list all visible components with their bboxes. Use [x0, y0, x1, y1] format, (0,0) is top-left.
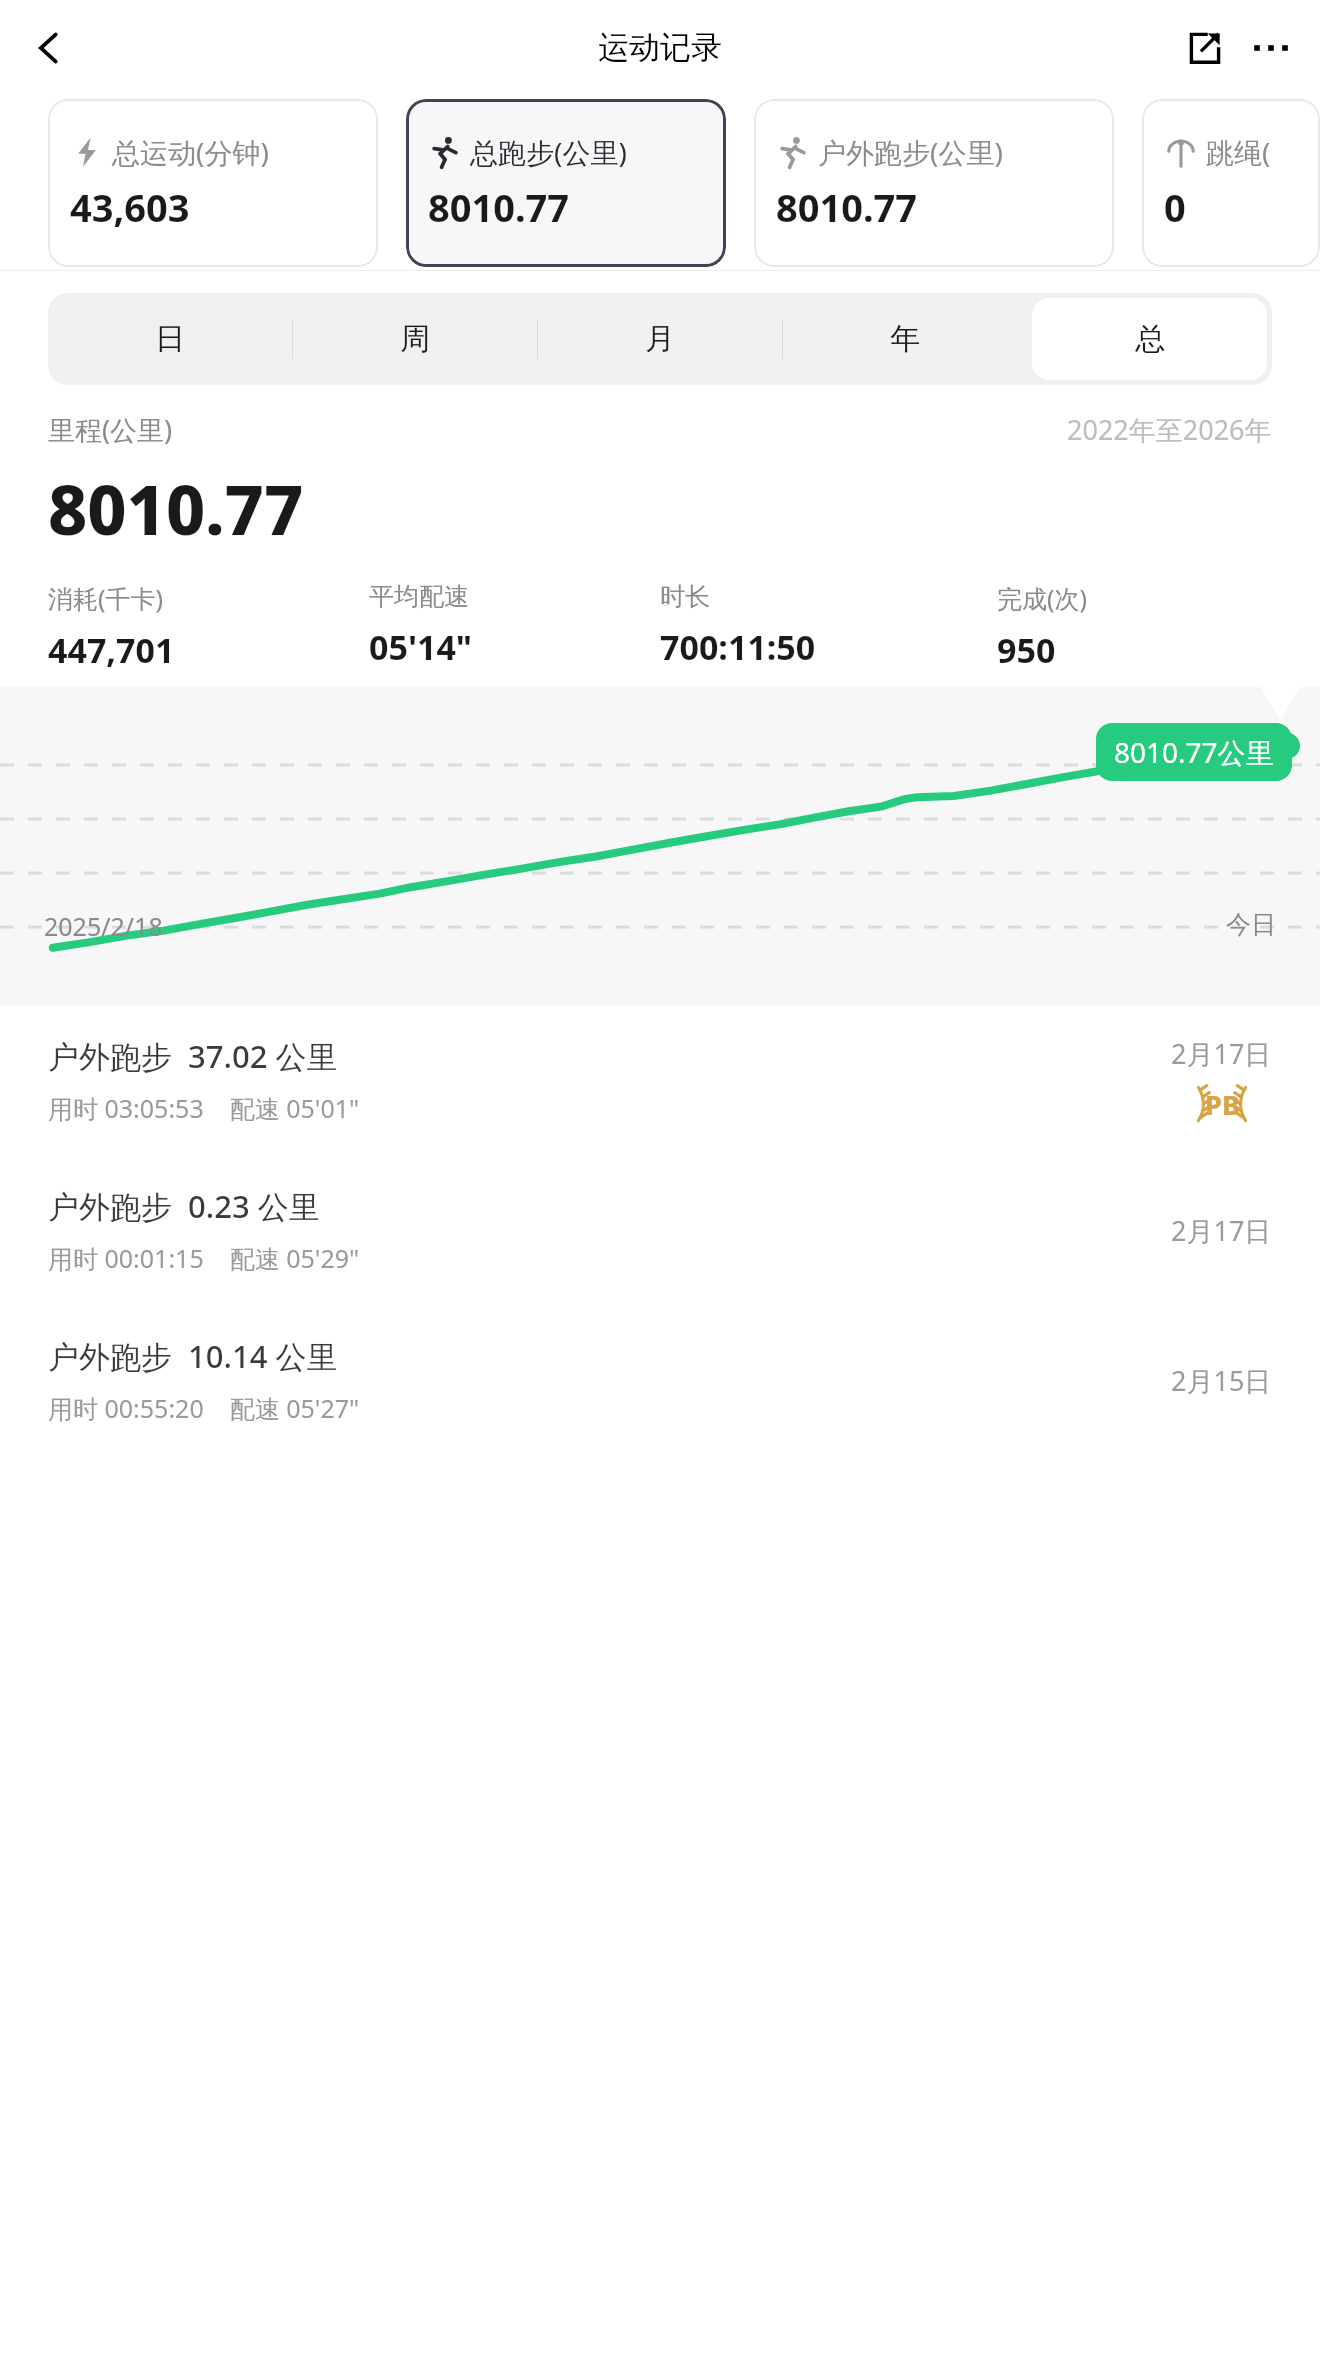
staticText: 日 — [155, 320, 185, 358]
staticText: 0 — [1164, 181, 1186, 233]
staticText: 2022年至2026年 — [1067, 411, 1272, 448]
staticText: 户外跑步 10.14 公里 — [48, 1335, 338, 1377]
staticText: 950 — [997, 627, 1056, 673]
staticText: 年 — [890, 320, 920, 358]
button[interactable]: More options — [1238, 15, 1304, 81]
staticText: 时长 — [660, 581, 710, 612]
button[interactable]: 年 — [787, 298, 1022, 380]
staticText: 总跑步(公里) — [470, 133, 627, 171]
button[interactable]: 户外跑步 10.14 公里 — [0, 1305, 1320, 1455]
staticText: 用时 00:55:20 配速 05'27" — [48, 1391, 360, 1425]
button[interactable]: 总跑步(公里) — [406, 99, 726, 267]
staticText: 2025/2/18 — [44, 909, 163, 943]
staticText: 消耗(千卡) — [48, 581, 164, 615]
button[interactable]: 周 — [297, 298, 532, 380]
staticText: PB — [1205, 1086, 1240, 1123]
staticText: 里程(公里) — [48, 411, 173, 448]
staticText: 跳绳( — [1206, 133, 1271, 171]
button[interactable]: 总 — [1032, 298, 1267, 380]
button[interactable]: Share — [1172, 15, 1238, 81]
staticText: 平均配速 — [369, 581, 469, 612]
staticText: 完成(次) — [997, 581, 1088, 615]
staticText: 700:11:50 — [660, 624, 816, 670]
staticText: 今日 — [1226, 909, 1276, 940]
button[interactable]: 总运动(分钟) — [48, 99, 378, 267]
button[interactable]: 月 — [542, 298, 777, 380]
staticText: 用时 03:05:53 配速 05'01" — [48, 1091, 360, 1125]
staticText: 8010.77公里 — [1114, 733, 1274, 771]
button[interactable]: 户外跑步 0.23 公里 — [0, 1155, 1320, 1305]
staticText: 8010.77 — [48, 462, 304, 555]
staticText: 运动记录 — [598, 28, 722, 67]
staticText: 8010.77 — [776, 181, 918, 233]
button[interactable]: 日 — [53, 298, 287, 380]
staticText: 8010.77 — [428, 181, 570, 233]
staticText: 总运动(分钟) — [112, 133, 269, 171]
staticText: 户外跑步 37.02 公里 — [48, 1035, 338, 1077]
staticText: 05'14" — [369, 624, 473, 670]
button[interactable]: 户外跑步 37.02 公里 — [0, 1005, 1320, 1155]
staticText: 户外跑步(公里) — [818, 133, 1003, 171]
staticText: 2月15日 — [1171, 1362, 1272, 1399]
staticText: 总 — [1135, 320, 1165, 358]
staticText: 43,603 — [70, 181, 190, 233]
staticText: 2月17日 — [1171, 1035, 1272, 1072]
staticText: 2月17日 — [1171, 1212, 1272, 1249]
staticText: 用时 00:01:15 配速 05'29" — [48, 1241, 360, 1275]
button[interactable]: 户外跑步(公里) — [754, 99, 1114, 267]
staticText: 月 — [645, 320, 675, 358]
staticText: 户外跑步 0.23 公里 — [48, 1185, 320, 1227]
staticText: 周 — [400, 320, 430, 358]
staticText: 447,701 — [48, 627, 175, 673]
button[interactable]: Back — [18, 17, 80, 79]
button[interactable]: 跳绳( — [1142, 99, 1320, 267]
